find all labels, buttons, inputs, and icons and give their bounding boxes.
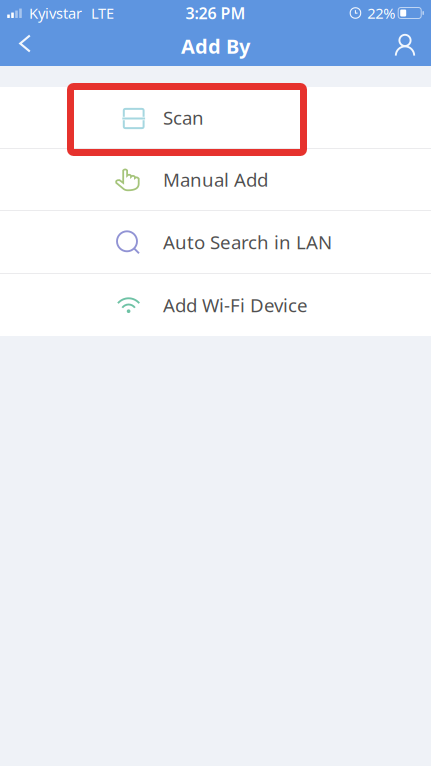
staticText: 22% [367, 3, 395, 23]
staticText: LTE [91, 3, 114, 23]
staticText: Scan [163, 105, 204, 130]
staticText: 3:26 PM [185, 2, 245, 24]
button[interactable]: Scan [0, 87, 431, 148]
button[interactable]: Manual Add [0, 149, 431, 210]
button[interactable]: Add Wi-Fi Device [0, 274, 431, 336]
button[interactable]: Back [4, 26, 46, 66]
staticText: Auto Search in LAN [163, 230, 332, 254]
staticText: Manual Add [163, 167, 268, 192]
button[interactable]: Account [384, 26, 426, 66]
button[interactable]: Auto Search in LAN [0, 211, 431, 273]
staticText: Add Wi-Fi Device [163, 293, 308, 317]
staticText: Add By [181, 33, 250, 59]
staticText: Kyivstar [29, 3, 82, 23]
